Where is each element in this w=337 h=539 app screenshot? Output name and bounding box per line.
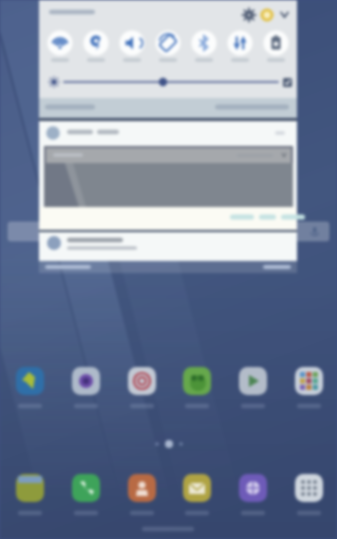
button[interactable]: Settings: [239, 3, 259, 23]
button[interactable]: User profile: [259, 3, 279, 23]
button[interactable]: Clear all: [168, 98, 297, 118]
button[interactable]: Screenshot captured notification: [39, 121, 297, 207]
button[interactable]: Expand: [279, 4, 297, 22]
button[interactable]: Notification settings: [39, 98, 168, 118]
button[interactable]: Location: [75, 26, 112, 64]
button[interactable]: Brightness slider: [39, 64, 277, 84]
button[interactable]: Delete: [243, 207, 267, 230]
button[interactable]: Share: [211, 207, 243, 230]
button[interactable]: Wi-Fi: [39, 26, 75, 64]
button[interactable]: Mobile data: [223, 26, 260, 64]
button[interactable]: Auto rotate: [149, 26, 186, 64]
button[interactable]: Sound: [112, 26, 149, 64]
button[interactable]: Power saving: [260, 26, 297, 64]
button[interactable]: Edit: [267, 207, 297, 230]
button[interactable]: USB notification: [39, 232, 297, 261]
button[interactable]: Auto brightness: [277, 64, 297, 84]
button[interactable]: Bluetooth: [186, 26, 223, 64]
